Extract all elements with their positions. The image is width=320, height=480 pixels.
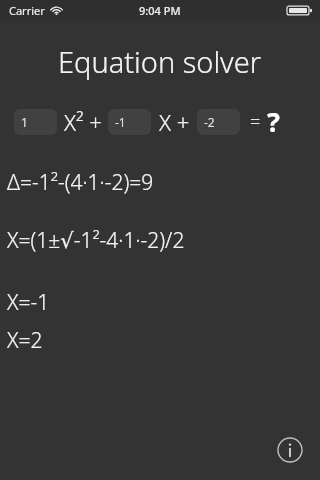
staticText: X=2 bbox=[7, 326, 43, 355]
button[interactable]: Coefficient c bbox=[197, 109, 240, 135]
staticText: X=(1±√-1²-4·1·-2)/2 bbox=[7, 226, 185, 255]
staticText: = bbox=[250, 109, 261, 134]
button[interactable]: Info bbox=[275, 435, 305, 465]
staticText: Δ=-1²-(4·1·-2)=9 bbox=[7, 168, 154, 197]
staticText: -1 bbox=[115, 114, 126, 130]
staticText: Carrier bbox=[9, 3, 45, 18]
staticText: Equation solver bbox=[58, 42, 262, 81]
staticText: 9:04 PM bbox=[139, 3, 181, 18]
staticText: -2 bbox=[204, 114, 215, 130]
staticText: X² + bbox=[64, 107, 102, 137]
staticText: 1 bbox=[21, 114, 28, 130]
staticText: X + bbox=[159, 107, 190, 137]
staticText: X=-1 bbox=[7, 288, 50, 317]
staticText: ? bbox=[267, 103, 280, 140]
button[interactable]: Coefficient b bbox=[108, 109, 151, 135]
button[interactable]: Coefficient a bbox=[14, 109, 57, 135]
